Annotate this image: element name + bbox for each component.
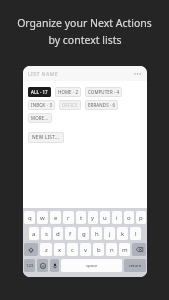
staticText: u [103,214,107,222]
button[interactable]: k [117,227,128,240]
staticText: b [97,246,101,254]
button[interactable]: ERRANDS [85,100,118,110]
button[interactable]: HOME [55,87,81,97]
button[interactable]: n [106,243,117,256]
staticText: h [95,230,99,238]
staticText: · 2 [72,89,78,95]
staticText: q [28,214,32,222]
button[interactable]: a [29,227,39,240]
button[interactable]: Shift [24,243,38,256]
button[interactable]: w [37,211,48,224]
staticText: t [80,214,83,222]
staticText: LIST NAME [28,70,59,77]
button[interactable]: p [136,211,146,224]
button[interactable]: s [41,227,51,240]
staticText: ALL [31,89,39,95]
button[interactable]: f [65,227,76,240]
staticText: c [71,246,74,254]
staticText: k [121,230,125,238]
button[interactable]: Backspace [132,243,146,256]
staticText: NEW LIST... [32,134,60,141]
staticText: by context lists [48,33,122,47]
staticText: p [139,214,143,222]
button[interactable]: x [54,243,65,256]
button[interactable]: 123 [24,259,35,272]
button[interactable]: y [88,211,98,224]
button[interactable]: INBOX [28,100,55,110]
staticText: s [45,230,48,238]
staticText: e [54,214,58,222]
staticText: space [86,263,98,269]
staticText: · 17 [39,89,48,95]
staticText: · 3 [46,102,52,108]
button[interactable]: Voice input [50,259,59,272]
button[interactable]: v [80,243,91,256]
staticText: n [110,246,114,254]
button[interactable]: m [119,243,130,256]
button[interactable]: space [61,259,122,272]
staticText: a [32,230,36,238]
staticText: j [109,230,111,238]
staticText: o [127,214,131,222]
staticText: z [45,246,48,254]
button[interactable]: b [93,243,104,256]
staticText: w [40,214,45,222]
staticText: · 6 [109,102,115,108]
staticText: i [116,214,118,222]
staticText: return [129,263,142,269]
staticText: d [56,230,60,238]
button[interactable]: OFFICE [59,100,81,110]
staticText: · 4 [113,89,119,95]
staticText: Organize your Next Actions [17,16,152,30]
staticText: x [58,246,62,254]
button[interactable]: r [63,211,74,224]
staticText: ERRANDS [88,102,109,108]
button[interactable]: e [50,211,61,224]
button[interactable]: COMPUTER [85,87,122,97]
button[interactable]: MORE... [28,113,52,123]
button[interactable]: return [124,259,146,272]
button[interactable]: d [53,227,63,240]
button[interactable]: c [67,243,78,256]
button[interactable]: t [76,211,86,224]
staticText: v [84,246,88,254]
button[interactable]: ALL [28,87,51,97]
button[interactable]: q [24,211,35,224]
button[interactable]: o [124,211,134,224]
button[interactable]: i [112,211,122,224]
staticText: OFFICE [62,102,78,108]
button[interactable]: NEW LIST... [28,132,64,143]
staticText: HOME [58,89,72,95]
staticText: r [67,214,70,222]
staticText: g [82,230,86,238]
staticText: f [69,230,72,238]
staticText: INBOX [31,102,46,108]
staticText: l [135,230,137,238]
button[interactable]: j [104,227,115,240]
staticText: MORE... [31,115,49,121]
button[interactable]: z [40,243,52,256]
staticText: 123 [26,263,34,269]
staticText: m [122,246,128,254]
button[interactable]: u [100,211,110,224]
button[interactable]: LIST NAME [23,66,147,81]
button[interactable]: Emoji [37,259,48,272]
button[interactable]: l [130,227,141,240]
staticText: y [91,214,95,222]
button[interactable]: h [91,227,102,240]
staticText: COMPUTER [88,89,113,95]
button[interactable]: g [78,227,89,240]
button[interactable]: More options [132,69,142,79]
